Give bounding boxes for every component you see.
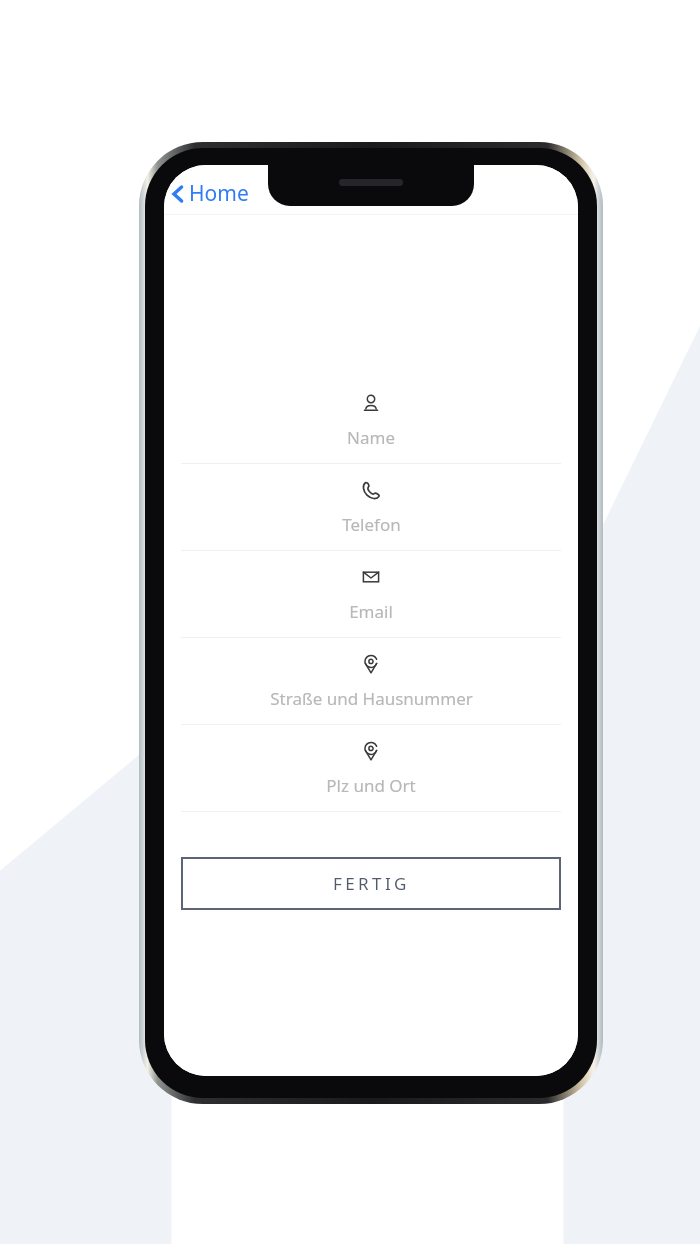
button[interactable]: Email field	[164, 551, 578, 638]
staticText: Straße und Hausnummer	[270, 687, 473, 710]
button[interactable]: City field	[164, 725, 578, 812]
staticText: Home	[189, 179, 249, 208]
staticText: Name	[347, 426, 395, 449]
staticText: Telefon	[342, 513, 401, 536]
button[interactable]: FERTIG	[181, 857, 561, 910]
button[interactable]: Street field	[164, 638, 578, 725]
staticText: Plz und Ort	[326, 774, 416, 797]
staticText: Email	[349, 600, 393, 623]
button[interactable]: Name field	[164, 377, 578, 464]
button[interactable]: Home	[166, 176, 255, 211]
button[interactable]: Phone field	[164, 464, 578, 551]
staticText: FERTIG	[333, 872, 410, 895]
